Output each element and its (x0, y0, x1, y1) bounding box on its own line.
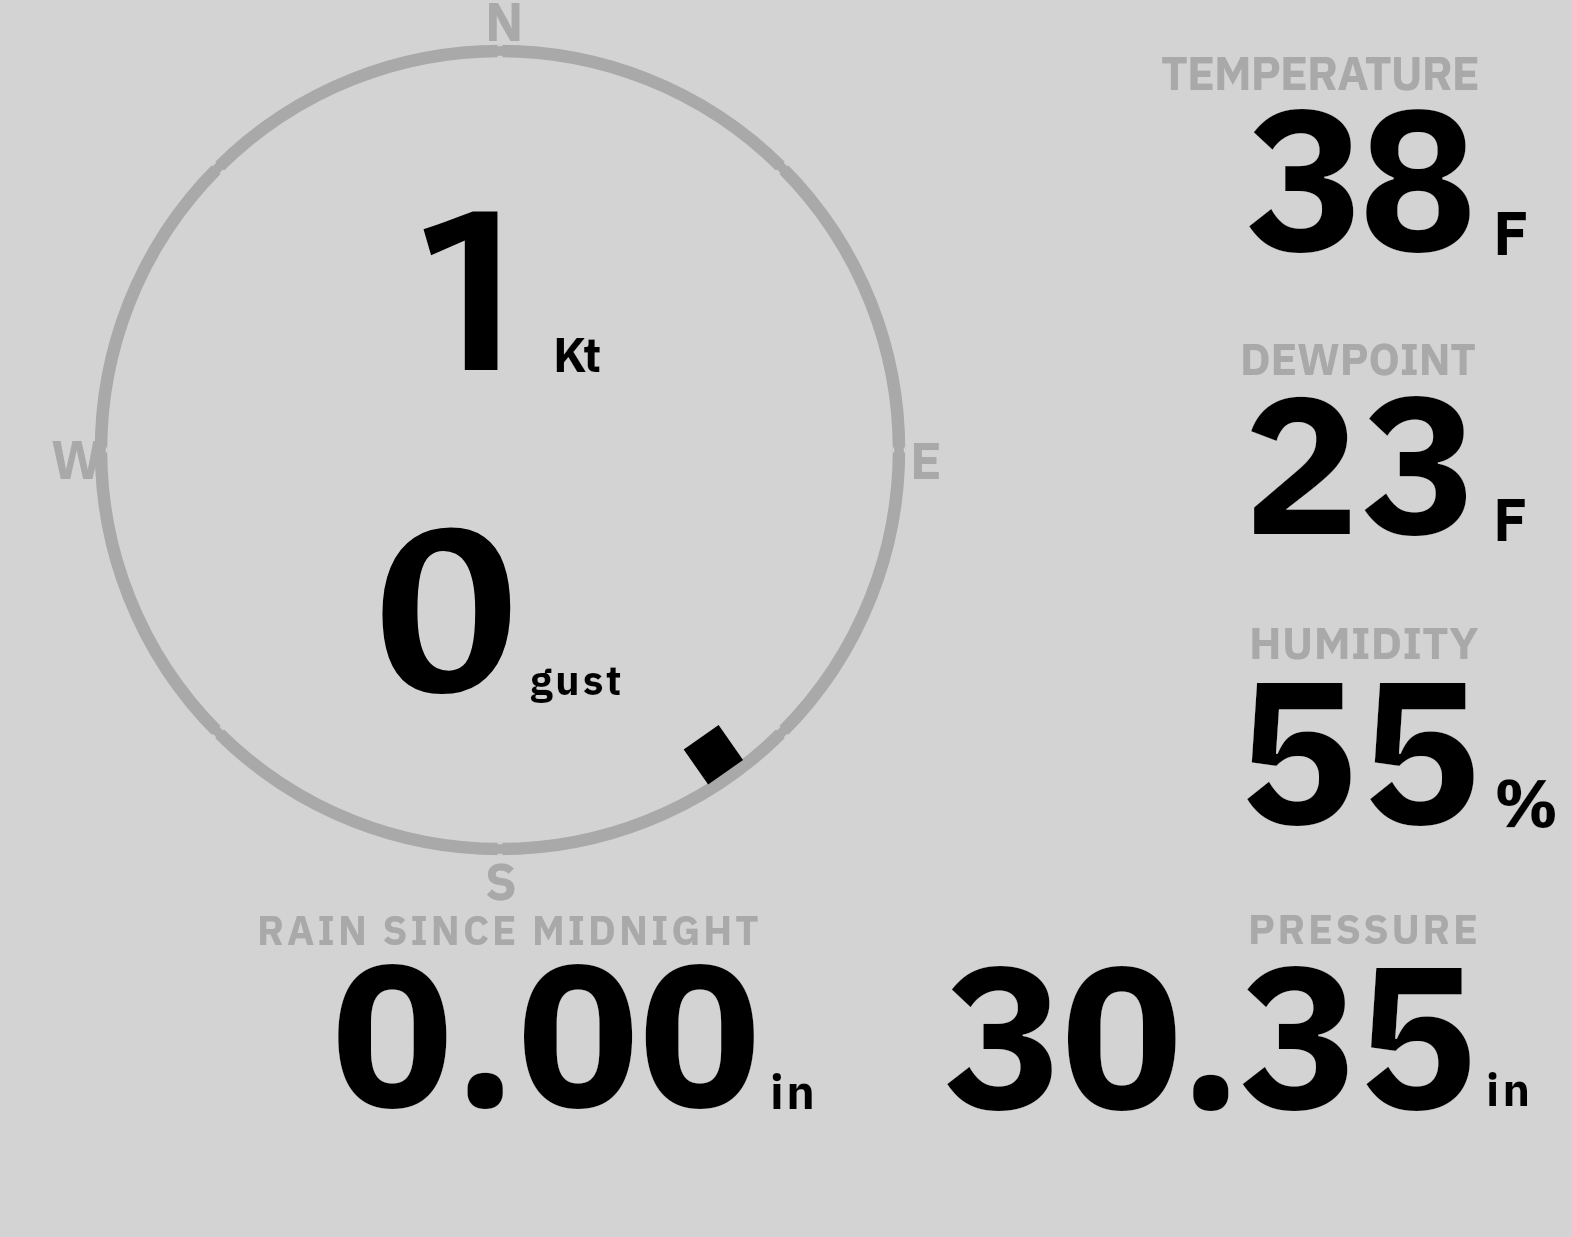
staticText: 38 (1246, 47, 1471, 306)
staticText: E (910, 426, 942, 494)
button[interactable]: Pressure 30.35 in (900, 898, 1560, 1123)
button[interactable]: Rain since midnight 0.00 in (240, 898, 830, 1123)
staticText: W (51, 425, 103, 494)
button[interactable]: Dewpoint 23 F (1140, 325, 1560, 550)
staticText: 23 (1243, 335, 1480, 587)
button[interactable]: Humidity 55 percent (1140, 610, 1560, 835)
staticText: F (1493, 192, 1529, 271)
staticText: 30.35 (944, 904, 1476, 1164)
staticText: Kt (553, 323, 600, 385)
staticText: in (770, 1060, 818, 1122)
staticText: 0.00 (332, 901, 762, 1162)
button[interactable]: Temperature 38 F (1140, 40, 1560, 265)
staticText: S (485, 848, 517, 914)
staticText: F (1493, 481, 1528, 558)
staticText: 1 (400, 137, 540, 448)
staticText: 55 (1238, 619, 1484, 879)
button[interactable]: Wind: 1 knots, gusting 0, from 145 degre… (96, 44, 904, 852)
staticText: % (1494, 759, 1559, 845)
staticText: RAIN SINCE MIDNIGHT (257, 904, 762, 956)
staticText: TEMPERATURE (1161, 43, 1479, 103)
staticText: PRESSURE (1248, 902, 1481, 955)
staticText: DEWPOINT (1240, 330, 1476, 387)
staticText: N (485, 0, 524, 56)
staticText: HUMIDITY (1249, 613, 1479, 672)
staticText: in (1486, 1059, 1534, 1119)
staticText: 0 (376, 457, 517, 768)
staticText: gust (530, 653, 625, 706)
